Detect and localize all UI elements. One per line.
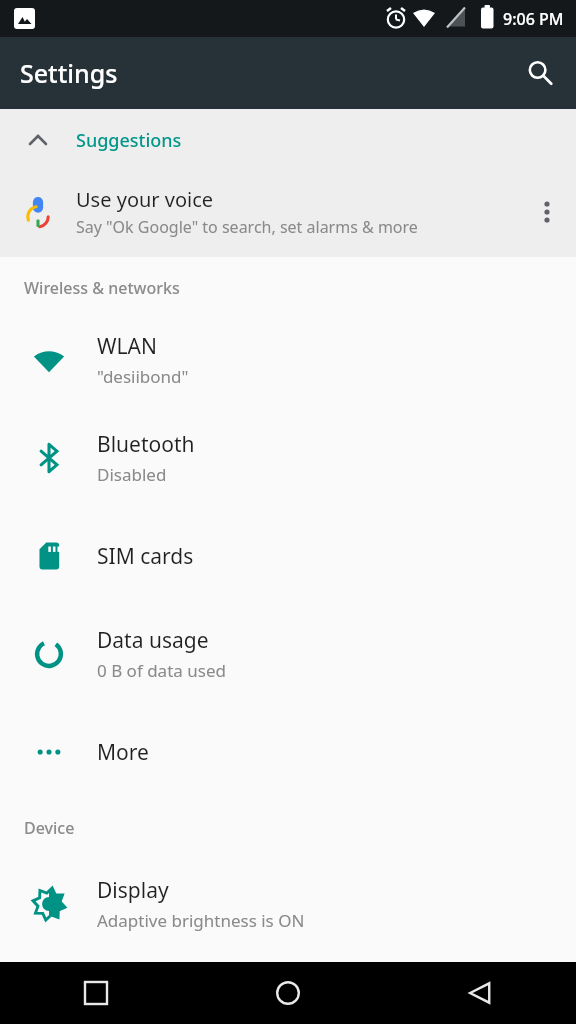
- staticText: "desiibond": [97, 365, 189, 388]
- staticText: Suggestions: [76, 128, 182, 153]
- button[interactable]: Suggestions: [0, 109, 576, 171]
- staticText: Disabled: [97, 463, 167, 486]
- staticText: Settings: [20, 56, 118, 90]
- button[interactable]: Home: [192, 962, 384, 1024]
- staticText: Display: [97, 876, 169, 905]
- staticText: 9:06 PM: [503, 8, 564, 30]
- button[interactable]: Back: [384, 962, 576, 1024]
- staticText: Say "Ok Google" to search, set alarms & …: [76, 216, 418, 238]
- button[interactable]: Recents: [0, 962, 192, 1024]
- button[interactable]: Search: [516, 49, 564, 97]
- button[interactable]: Data usage: [0, 605, 576, 703]
- staticText: WLAN: [97, 332, 157, 361]
- staticText: Data usage: [97, 626, 209, 655]
- staticText: More: [97, 738, 149, 767]
- staticText: Use your voice: [76, 186, 214, 213]
- staticText: Adaptive brightness is ON: [97, 909, 305, 932]
- button[interactable]: More options: [518, 171, 576, 253]
- staticText: 0 B of data used: [97, 659, 226, 682]
- button[interactable]: SIM cards: [0, 507, 576, 605]
- staticText: SIM cards: [97, 542, 194, 571]
- staticText: Bluetooth: [97, 430, 195, 459]
- button[interactable]: Bluetooth: [0, 409, 576, 507]
- button[interactable]: Use your voice: [0, 171, 576, 253]
- button[interactable]: Display: [0, 855, 576, 953]
- staticText: Device: [24, 817, 75, 839]
- staticText: Wireless & networks: [24, 277, 180, 299]
- button[interactable]: WLAN: [0, 311, 576, 409]
- button[interactable]: More: [0, 703, 576, 801]
